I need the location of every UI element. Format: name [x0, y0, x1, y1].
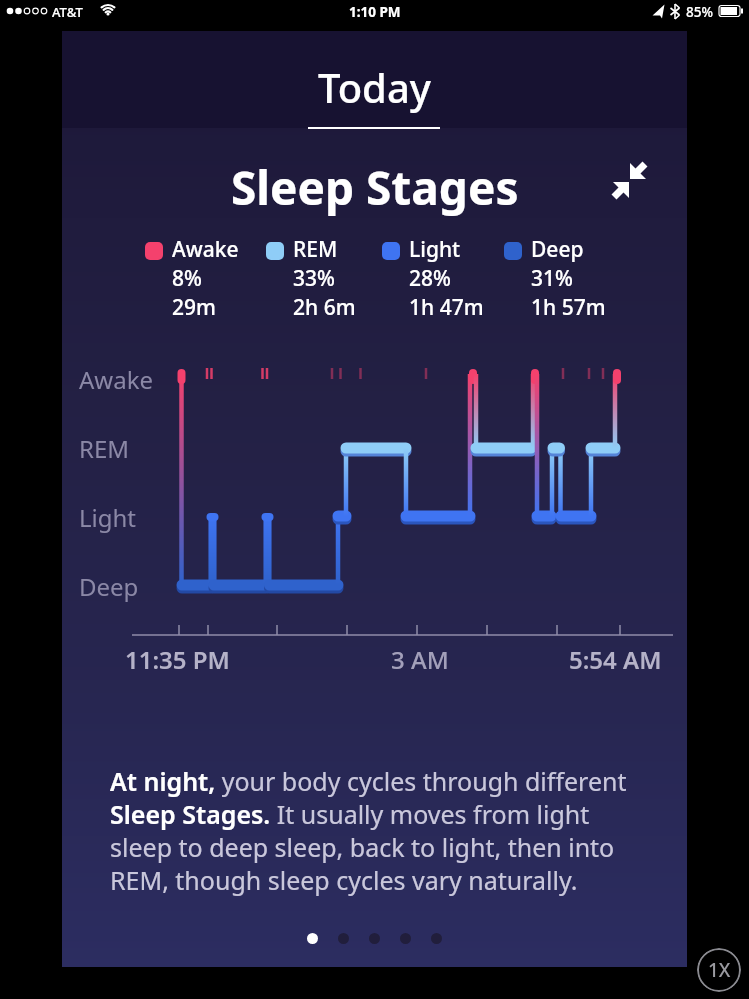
staticText: REM	[293, 235, 338, 264]
staticText: Light	[409, 235, 461, 264]
staticText: REM	[79, 432, 130, 465]
staticText: At night, your body cycles through diffe…	[110, 764, 650, 897]
staticText: Light	[79, 501, 137, 534]
staticText: AT&T	[52, 3, 83, 21]
button[interactable]	[307, 933, 442, 944]
button[interactable]	[602, 151, 654, 203]
staticText: 1:10 PM	[349, 3, 401, 21]
staticText: 1X	[708, 957, 731, 983]
staticText: Awake	[79, 363, 154, 396]
staticText: 28%	[409, 264, 451, 293]
staticText: Deep	[79, 570, 139, 603]
staticText: 8%	[172, 264, 202, 293]
staticText: 31%	[531, 264, 573, 293]
staticText: 1h 57m	[531, 293, 606, 322]
staticText: 11:35 PM	[125, 643, 230, 676]
staticText: Deep	[531, 235, 584, 264]
staticText: 3 AM	[391, 643, 449, 676]
staticText: 5:54 AM	[569, 643, 662, 676]
button[interactable]: Today	[318, 60, 431, 114]
staticText: 29m	[172, 293, 216, 322]
staticText: 33%	[293, 264, 335, 293]
staticText: 2h 6m	[293, 293, 356, 322]
button[interactable]: 1X	[697, 948, 741, 992]
staticText: 85%	[686, 3, 713, 21]
staticText: 1h 47m	[409, 293, 484, 322]
staticText: Awake	[172, 235, 239, 264]
staticText: Sleep Stages	[231, 156, 519, 219]
